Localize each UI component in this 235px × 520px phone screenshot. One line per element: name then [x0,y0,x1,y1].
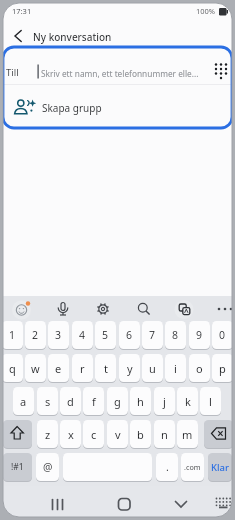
button[interactable]: k [177,387,198,415]
button[interactable]: e [48,354,69,382]
button[interactable]: h [130,387,151,415]
staticText: Skriv ett namn, ett telefonnummer elle..… [41,68,199,79]
staticText: h [137,394,144,409]
button[interactable]: i [165,354,186,382]
button[interactable]: q [2,354,23,382]
staticText: 1 [9,328,16,342]
button[interactable]: @ [36,453,59,481]
button[interactable] [204,420,233,448]
staticText: i [174,361,177,376]
button[interactable] [4,86,232,127]
staticText: c [91,427,97,442]
staticText: b [137,427,144,442]
button[interactable]: t [95,354,116,382]
button[interactable]: 3 [48,321,69,349]
button[interactable]: d [60,387,81,415]
staticText: 17:31 [12,6,32,16]
button[interactable]: 4 [72,321,93,349]
button[interactable]: a [13,387,34,415]
staticText: g [114,394,121,409]
staticText: @ [43,460,53,474]
staticText: v [115,427,121,442]
button[interactable]: s [37,387,58,415]
button[interactable]: 6 [119,321,140,349]
staticText: x [68,427,74,442]
button[interactable]: c [83,420,104,448]
button[interactable]: 9 [189,321,210,349]
button[interactable]: !#1 [3,453,32,481]
button[interactable]: u [142,354,163,382]
staticText: e [55,361,62,376]
button[interactable] [214,298,235,320]
staticText: . [166,460,169,474]
staticText: o [196,361,203,376]
button[interactable]: 5 [95,321,116,349]
button[interactable]: .com [181,453,204,481]
staticText: l [209,394,212,409]
staticText: 2 [32,328,39,342]
staticText: .com [184,462,201,472]
staticText: p [219,361,226,376]
button[interactable]: . [156,453,178,481]
button[interactable]: v [107,420,128,448]
staticText: d [67,394,74,409]
button[interactable] [106,490,142,517]
staticText: Skapa grupp [42,101,102,115]
staticText: t [104,361,108,376]
button[interactable]: o [189,354,210,382]
button[interactable] [173,298,195,320]
staticText: y [127,361,133,376]
staticText: 0 [219,328,226,342]
button[interactable]: p [212,354,233,382]
button[interactable] [212,492,234,514]
staticText: w [31,361,40,376]
button[interactable]: g [107,387,128,415]
staticText: j [163,394,166,409]
button[interactable]: f [83,387,104,415]
button[interactable]: 7 [142,321,163,349]
button[interactable]: 8 [165,321,186,349]
staticText: a [20,394,27,409]
button[interactable]: 2 [25,321,46,349]
button[interactable]: x [60,420,81,448]
staticText: 5 [102,328,109,342]
button[interactable] [133,298,155,320]
staticText: Ny konversation [33,30,112,44]
staticText: !#1 [11,461,24,473]
button[interactable] [8,27,28,45]
button[interactable]: 1 [2,321,23,349]
button[interactable] [206,58,232,84]
button[interactable] [163,490,199,517]
button[interactable]: l [200,387,221,415]
button[interactable]: y [119,354,140,382]
button[interactable] [92,298,114,320]
button[interactable]: z [37,420,58,448]
staticText: 3 [55,328,62,342]
button[interactable]: j [154,387,175,415]
staticText: Klar [211,461,230,474]
staticText: Till [6,66,19,79]
staticText: 4 [79,328,86,342]
staticText: f [92,394,96,409]
staticText: 100% [196,6,216,16]
staticText: n [161,427,168,442]
button[interactable]: r [72,354,93,382]
staticText: 8 [172,328,179,342]
button[interactable] [40,490,76,517]
button[interactable] [11,298,33,320]
staticText: z [45,427,51,442]
button[interactable] [52,298,74,320]
staticText: 9 [196,328,203,342]
button[interactable]: n [154,420,175,448]
button[interactable]: Klar [208,453,232,481]
button[interactable]: b [130,420,151,448]
staticText: r [80,361,85,376]
button[interactable]: m [177,420,198,448]
button[interactable]: w [25,354,46,382]
staticText: q [9,361,16,376]
button[interactable]: 0 [212,321,233,349]
button[interactable] [5,48,230,84]
button[interactable] [3,420,32,448]
staticText: m [182,427,193,442]
